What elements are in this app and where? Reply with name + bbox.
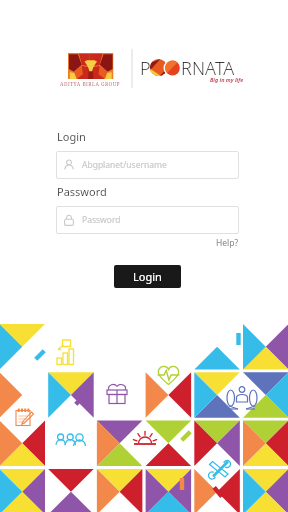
button[interactable]: Login <box>114 265 181 288</box>
button[interactable]: Help? <box>216 237 239 249</box>
staticText: Login <box>57 129 86 144</box>
staticText: Abgplanet/username <box>82 159 167 171</box>
staticText: Big in my life <box>210 76 244 83</box>
staticText: Login <box>133 269 162 284</box>
button[interactable]: Password <box>56 206 239 234</box>
staticText: Password <box>57 184 107 199</box>
staticText: P <box>140 56 151 81</box>
button[interactable]: Abgplanet/username <box>56 151 239 179</box>
staticText: RNATA <box>181 56 235 81</box>
staticText: Password <box>82 214 121 226</box>
staticText: ADITYA BIRLA GROUP <box>60 81 120 88</box>
